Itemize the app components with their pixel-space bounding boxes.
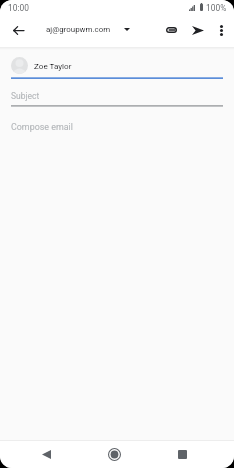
button[interactable]: Home (101, 441, 127, 468)
button[interactable]: Zoe Taylor (0, 50, 234, 80)
staticText: Compose email (11, 122, 73, 132)
button[interactable]: Compose email (0, 115, 234, 139)
button[interactable]: aj@groupwm.com (42, 18, 136, 41)
button[interactable]: Recent apps (169, 441, 195, 468)
button[interactable]: Attach file (158, 17, 184, 43)
staticText: aj@groupwm.com (46, 25, 111, 34)
staticText: Zoe Taylor (34, 61, 72, 70)
button[interactable]: Back (33, 441, 59, 468)
staticText: Subject (11, 91, 40, 101)
button[interactable]: Send (185, 17, 211, 43)
staticText: 10:00 (8, 3, 29, 13)
button[interactable]: Subject (0, 84, 234, 106)
staticText: 100% (206, 3, 227, 13)
button[interactable]: More options (208, 17, 234, 43)
button[interactable]: Navigate up (5, 17, 31, 43)
